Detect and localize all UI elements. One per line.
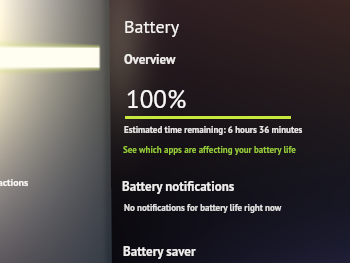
staticText: s actions	[0, 176, 29, 189]
button[interactable]: See which apps are affecting your batter…	[123, 144, 296, 156]
staticText: Battery	[124, 15, 180, 38]
staticText: Overview	[124, 51, 176, 68]
staticText: Battery notifications	[122, 178, 235, 195]
staticText: Battery saver	[123, 243, 196, 260]
staticText: No notifications for battery life right …	[124, 202, 282, 214]
staticText: Estimated time remaining: 6 hours 36 min…	[124, 124, 303, 136]
staticText: 100%	[126, 83, 187, 115]
